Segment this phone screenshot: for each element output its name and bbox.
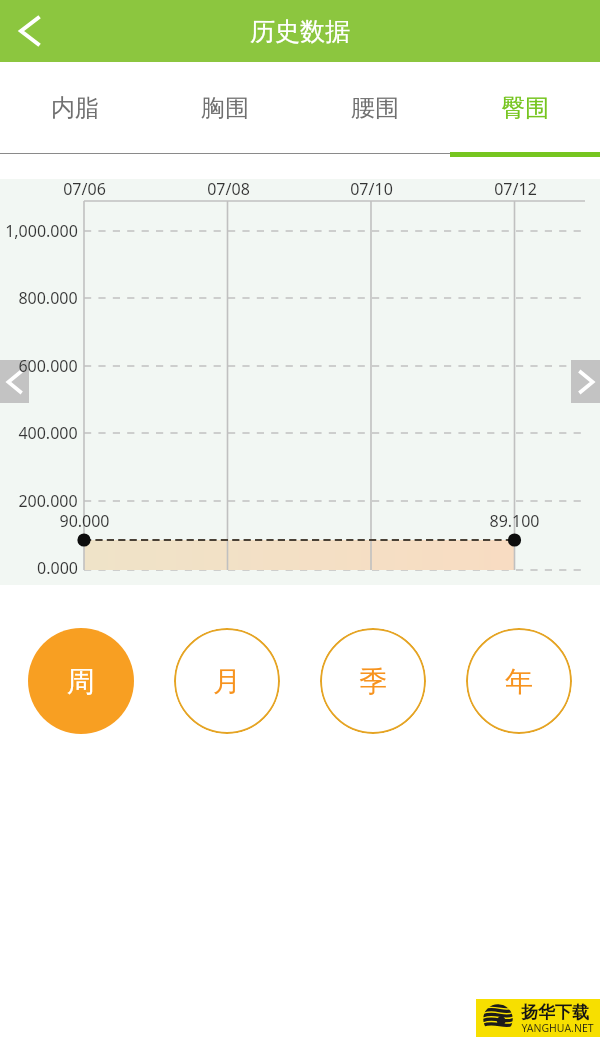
button[interactable]: 周 [28, 628, 134, 734]
button[interactable]: 内脂 [0, 62, 150, 154]
staticText: 0.000 [37, 557, 78, 579]
button[interactable]: Previous [0, 360, 29, 403]
staticText: 07/08 [207, 178, 250, 200]
staticText: 800.000 [18, 287, 78, 309]
staticText: 内脂 [51, 93, 99, 123]
button[interactable]: 胸围 [150, 62, 300, 154]
staticText: 腰围 [351, 93, 399, 123]
staticText: 季 [359, 664, 387, 699]
staticText: 07/12 [494, 178, 537, 200]
staticText: 年 [505, 664, 533, 699]
button[interactable]: 季 [320, 628, 426, 734]
button[interactable]: 月 [174, 628, 280, 734]
staticText: 90.000 [59, 510, 110, 532]
button[interactable]: 腰围 [300, 62, 450, 154]
staticText: 07/10 [350, 178, 393, 200]
button[interactable]: Back [0, 0, 58, 62]
button[interactable]: 臀围 [450, 62, 600, 154]
staticText: 历史数据 [250, 16, 350, 47]
staticText: 07/06 [63, 178, 106, 200]
staticText: 600.000 [18, 355, 78, 377]
button[interactable]: 年 [466, 628, 572, 734]
staticText: 胸围 [201, 93, 249, 123]
staticText: 月 [213, 664, 241, 699]
staticText: 周 [67, 664, 95, 699]
button[interactable]: Next [571, 360, 600, 403]
staticText: 扬华下载 [521, 1002, 589, 1023]
staticText: YANGHUA.NET [521, 1021, 594, 1035]
staticText: 1,000.000 [5, 220, 78, 242]
staticText: 臀围 [501, 93, 549, 123]
staticText: 400.000 [18, 422, 78, 444]
staticText: 200.000 [18, 490, 78, 512]
staticText: 89.100 [489, 510, 540, 532]
